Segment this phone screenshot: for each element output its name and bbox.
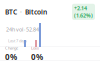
staticText: ·: [20, 7, 22, 16]
staticText: 0%: [5, 52, 17, 62]
staticText: Change: [5, 45, 18, 51]
staticText: +2.14 (1.62%): [74, 5, 93, 19]
staticText: 0%: [31, 52, 43, 62]
staticText: Bitcoin: [25, 7, 47, 16]
staticText: BTC: [5, 7, 17, 16]
staticText: 24h vol · 52.84: [6, 26, 39, 33]
staticText: Last 7 days: [8, 38, 27, 43]
staticText: Loss: [31, 45, 39, 51]
